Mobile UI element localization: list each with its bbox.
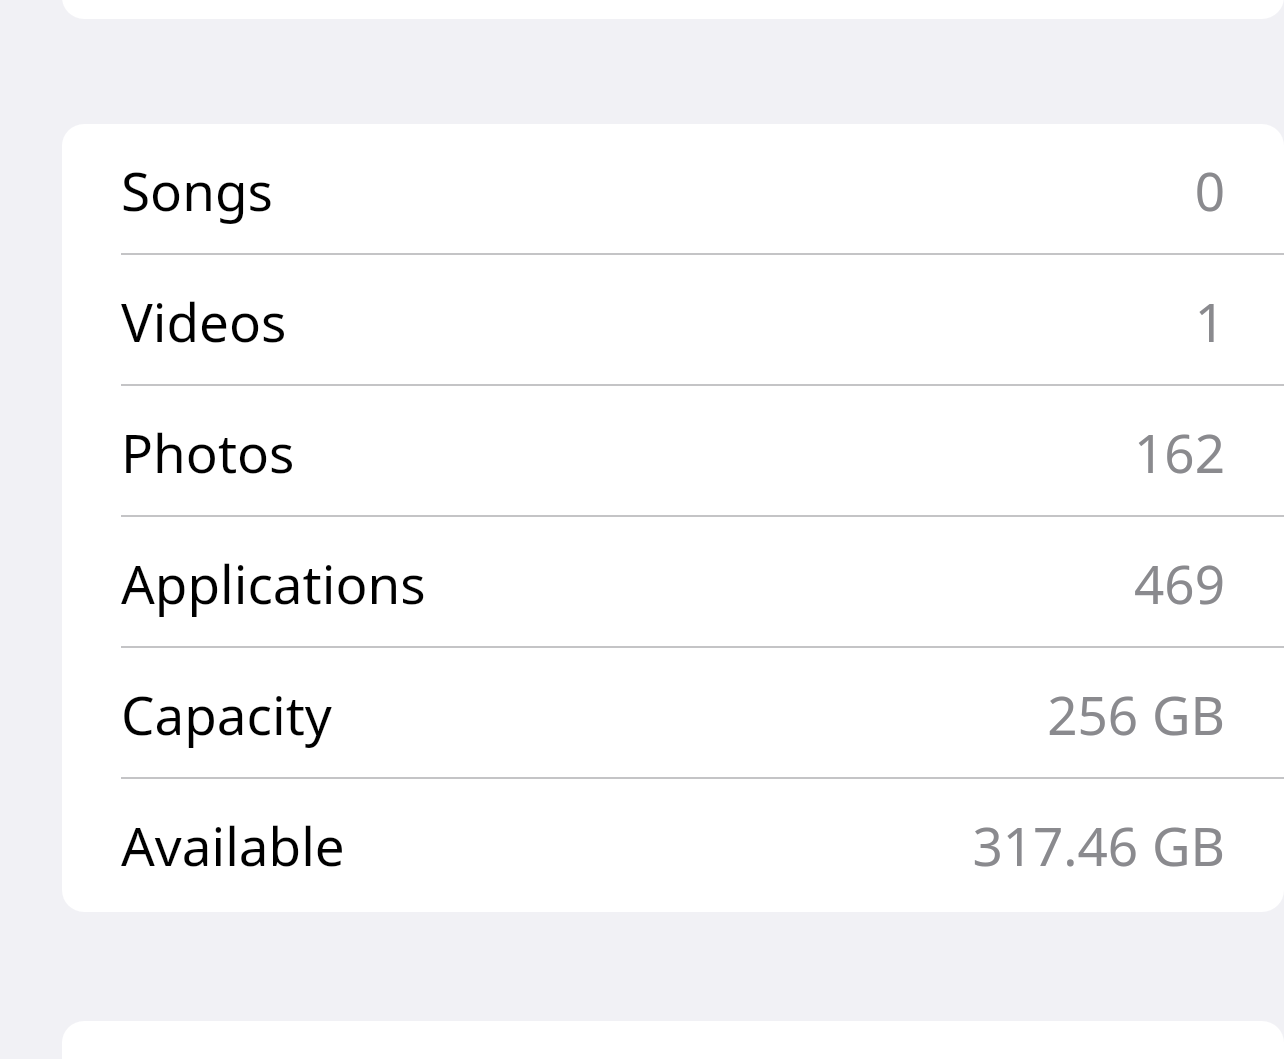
staticText: Available <box>121 809 345 881</box>
staticText: 1 <box>1194 285 1225 357</box>
staticText: Videos <box>121 285 287 357</box>
staticText: 162 <box>1134 416 1225 488</box>
button[interactable]: Applications <box>62 517 1284 648</box>
staticText: 0 <box>1194 154 1225 226</box>
staticText: 469 <box>1134 547 1225 619</box>
staticText: Applications <box>121 547 426 619</box>
staticText: Photos <box>121 416 295 488</box>
staticText: 256 GB <box>1047 678 1225 750</box>
button[interactable]: Videos <box>62 255 1284 386</box>
button[interactable]: Capacity <box>62 648 1284 779</box>
staticText: Capacity <box>121 678 332 750</box>
button[interactable]: Available <box>62 779 1284 910</box>
staticText: 317.46 GB <box>972 809 1225 881</box>
staticText: Songs <box>121 154 273 226</box>
button[interactable]: Photos <box>62 386 1284 517</box>
button[interactable]: Songs <box>62 124 1284 255</box>
